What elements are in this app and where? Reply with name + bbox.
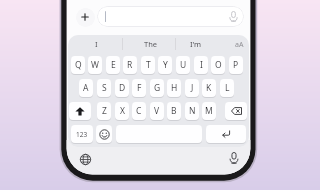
- button[interactable]: Y: [158, 56, 172, 74]
- button[interactable]: I: [70, 34, 122, 54]
- button[interactable]: X: [115, 102, 129, 120]
- staticText: O: [215, 59, 222, 71]
- button[interactable]: [225, 102, 247, 120]
- staticText: I: [200, 59, 203, 71]
- button[interactable]: D: [115, 79, 129, 97]
- button[interactable]: The: [125, 34, 177, 54]
- button[interactable]: A: [79, 79, 93, 97]
- button[interactable]: [97, 6, 244, 27]
- staticText: B: [171, 105, 177, 117]
- staticText: M: [205, 105, 213, 117]
- staticText: Z: [102, 105, 107, 117]
- button[interactable]: Q: [71, 56, 85, 74]
- button[interactable]: H: [167, 79, 181, 97]
- button[interactable]: P: [229, 56, 243, 74]
- button[interactable]: T: [141, 56, 155, 74]
- button[interactable]: aA: [213, 35, 265, 55]
- staticText: I: [95, 39, 98, 49]
- button[interactable]: [69, 102, 91, 120]
- staticText: Q: [75, 59, 82, 71]
- staticText: P: [233, 59, 239, 71]
- staticText: F: [137, 82, 142, 94]
- staticText: H: [171, 82, 178, 94]
- button[interactable]: Z: [97, 102, 111, 120]
- staticText: U: [180, 59, 187, 71]
- button[interactable]: [206, 125, 246, 143]
- button[interactable]: [76, 8, 95, 27]
- button[interactable]: N: [185, 102, 199, 120]
- button[interactable]: V: [150, 102, 164, 120]
- button[interactable]: O: [211, 56, 225, 74]
- button[interactable]: I: [194, 56, 208, 74]
- staticText: T: [146, 59, 151, 71]
- button[interactable]: J: [185, 79, 199, 97]
- staticText: L: [225, 82, 230, 94]
- button[interactable]: [96, 125, 112, 143]
- button[interactable]: K: [202, 79, 216, 97]
- button[interactable]: [79, 153, 92, 166]
- staticText: The: [144, 39, 158, 49]
- button[interactable]: I'm: [170, 34, 222, 54]
- staticText: G: [154, 82, 161, 94]
- button[interactable]: G: [150, 79, 164, 97]
- button[interactable]: R: [123, 56, 137, 74]
- staticText: S: [102, 82, 107, 94]
- staticText: W: [91, 59, 99, 71]
- staticText: A: [83, 82, 89, 94]
- staticText: D: [119, 82, 126, 94]
- staticText: 123: [76, 130, 88, 139]
- staticText: N: [189, 105, 196, 117]
- staticText: I'm: [190, 39, 202, 49]
- button[interactable]: U: [176, 56, 190, 74]
- staticText: E: [111, 59, 116, 71]
- button[interactable]: E: [106, 56, 120, 74]
- staticText: Y: [163, 59, 168, 71]
- staticText: K: [206, 82, 212, 94]
- button[interactable]: L: [220, 79, 234, 97]
- button[interactable]: [228, 152, 240, 164]
- staticText: aA: [235, 40, 244, 50]
- staticText: X: [120, 105, 125, 117]
- button[interactable]: F: [132, 79, 146, 97]
- button[interactable]: M: [202, 102, 216, 120]
- button[interactable]: S: [97, 79, 111, 97]
- button[interactable]: C: [132, 102, 146, 120]
- button[interactable]: W: [88, 56, 102, 74]
- button[interactable]: B: [167, 102, 181, 120]
- button[interactable]: [228, 11, 239, 22]
- staticText: V: [154, 105, 160, 117]
- button[interactable]: 123: [71, 125, 93, 143]
- staticText: R: [127, 59, 133, 71]
- staticText: J: [191, 82, 194, 94]
- staticText: C: [136, 105, 142, 117]
